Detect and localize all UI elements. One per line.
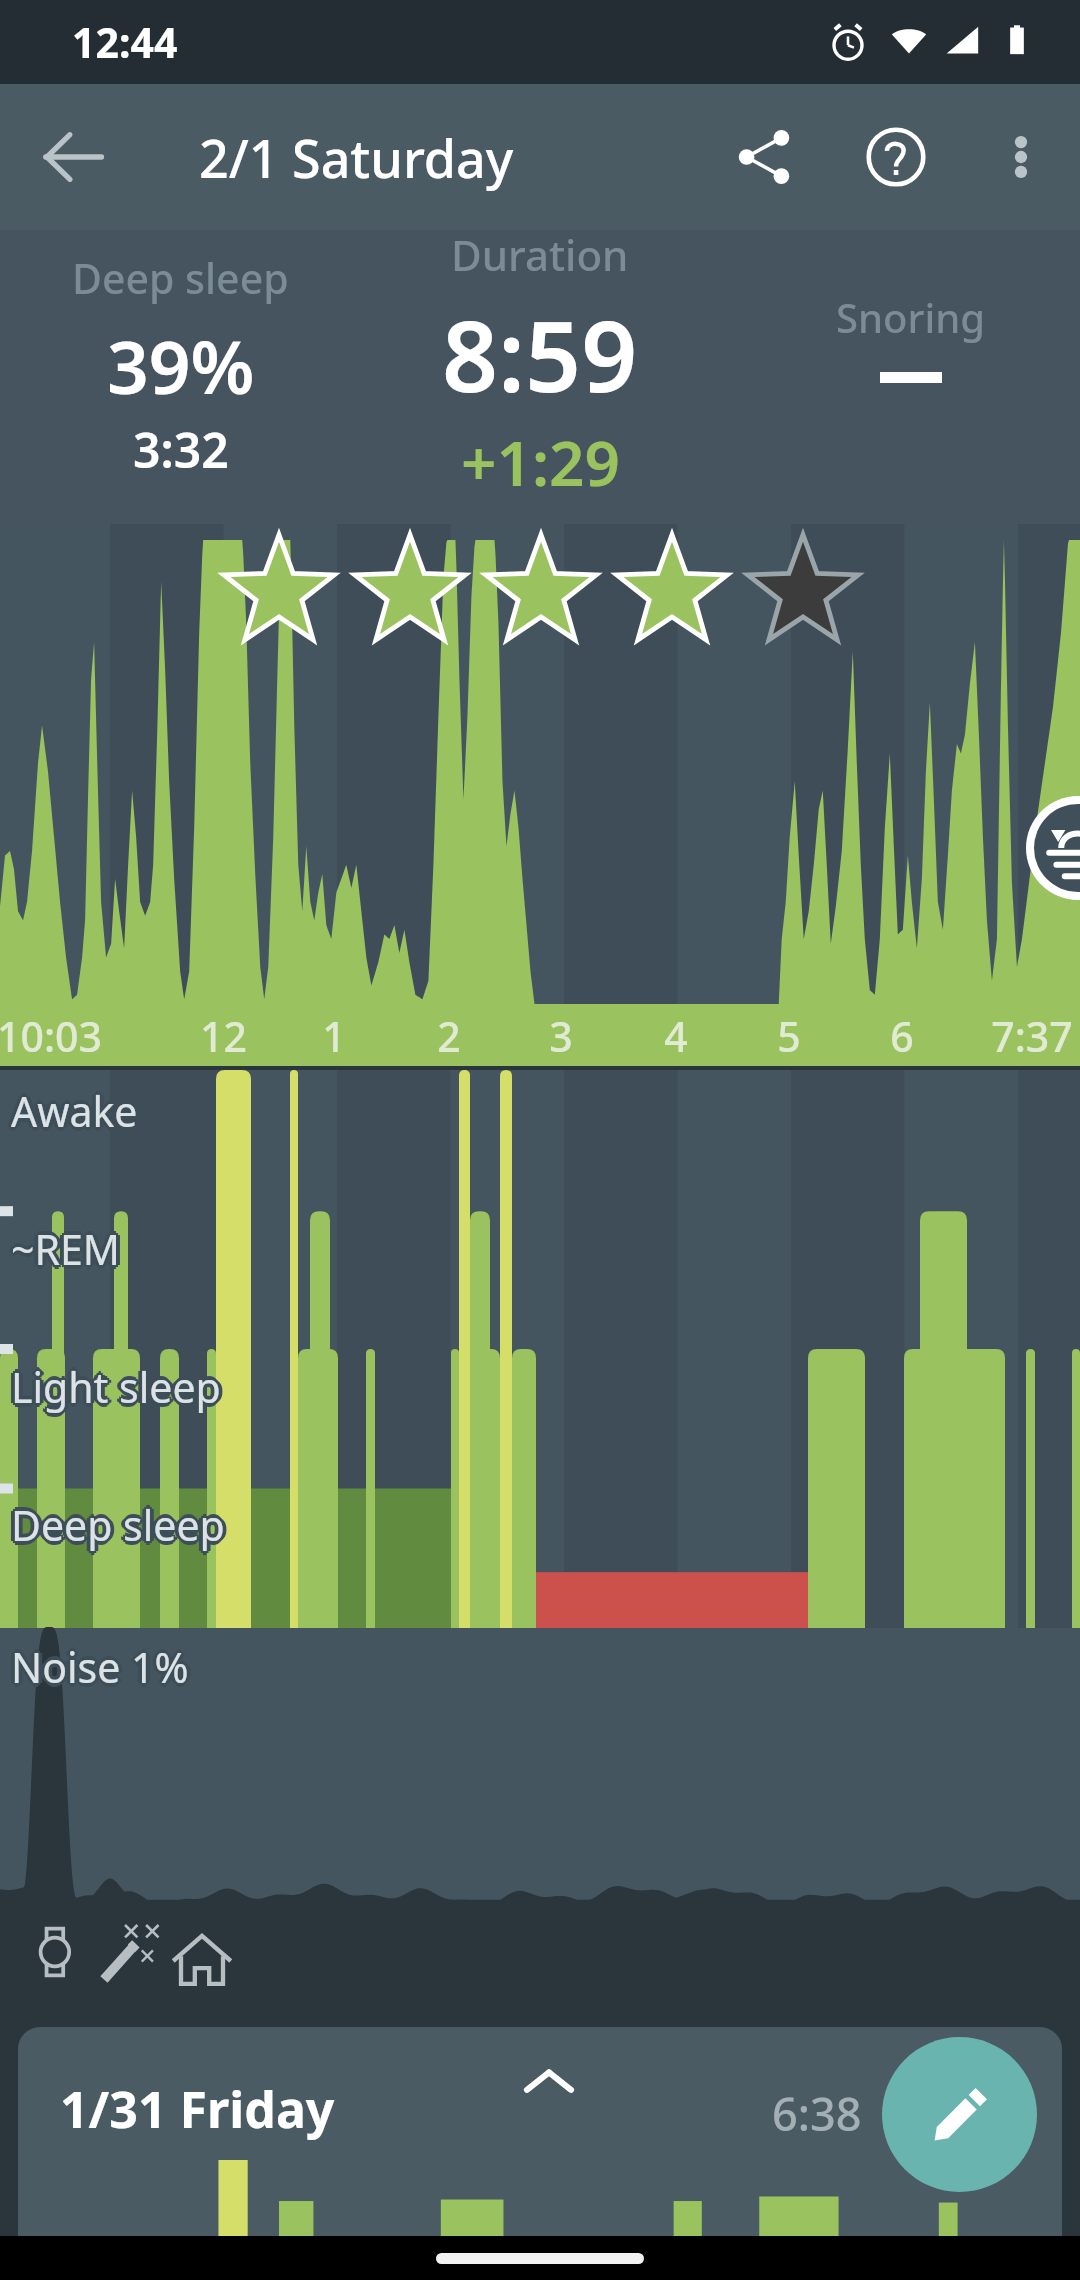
staticText: 10:03 xyxy=(0,1008,102,1064)
staticText: Noise 1% xyxy=(11,1637,189,1693)
staticText: 4 xyxy=(664,1008,688,1064)
staticText: Noise 1% xyxy=(11,1641,189,1697)
staticText: ~REM xyxy=(11,1217,120,1273)
staticText: ~REM xyxy=(13,1219,122,1275)
staticText: 3 xyxy=(549,1008,573,1064)
staticText: ~REM xyxy=(15,1221,124,1277)
staticText: Awake xyxy=(15,1083,142,1139)
staticText: 8:59 xyxy=(442,287,638,420)
staticText: Light sleep xyxy=(13,1357,223,1413)
staticText: 12 xyxy=(200,1008,247,1064)
staticText: Deep sleep xyxy=(11,1493,225,1549)
button[interactable]: Wearable xyxy=(22,1920,94,1992)
staticText: Light sleep xyxy=(15,1359,225,1415)
staticText: Noise 1% xyxy=(15,1639,193,1695)
staticText: 6:38 xyxy=(772,2083,862,2144)
staticText: Light sleep xyxy=(13,1359,223,1415)
staticText: Deep sleep xyxy=(11,1495,225,1551)
staticText: Deep sleep xyxy=(15,1497,229,1553)
staticText: ~REM xyxy=(13,1223,122,1279)
staticText: 2/1 Saturday xyxy=(199,122,514,193)
button[interactable]: Smart features xyxy=(94,1920,166,1992)
staticText: Noise 1% xyxy=(9,1637,187,1693)
staticText: Awake xyxy=(11,1087,138,1143)
staticText: Deep sleep xyxy=(11,1497,225,1553)
staticText: Deep sleep xyxy=(13,1497,227,1553)
staticText: Awake xyxy=(11,1081,138,1137)
staticText: 5 xyxy=(777,1008,801,1064)
staticText: ~REM xyxy=(7,1221,116,1277)
staticText: Awake xyxy=(11,1085,138,1141)
staticText: Awake xyxy=(11,1079,138,1135)
staticText: Deep sleep xyxy=(9,1499,223,1555)
staticText: 7:37 xyxy=(991,1008,1073,1064)
staticText: Deep sleep xyxy=(72,250,289,306)
staticText: 12:44 xyxy=(72,14,178,70)
staticText: 2 xyxy=(437,1008,461,1064)
button[interactable]: Back xyxy=(0,84,146,230)
staticText: ~REM xyxy=(11,1225,120,1281)
staticText: Deep sleep xyxy=(7,1497,221,1553)
staticText: Deep sleep xyxy=(9,1497,223,1553)
staticText: 3:32 xyxy=(133,417,229,482)
staticText: ~REM xyxy=(11,1219,120,1275)
staticText: +1:29 xyxy=(461,420,620,504)
staticText: Awake xyxy=(9,1081,136,1137)
staticText: ~REM xyxy=(13,1221,122,1277)
staticText: 39% xyxy=(107,316,255,415)
staticText: Deep sleep xyxy=(11,1501,225,1557)
staticText: Duration xyxy=(451,226,629,283)
staticText: Deep sleep xyxy=(13,1499,227,1555)
staticText: Deep sleep xyxy=(9,1495,223,1551)
staticText: Light sleep xyxy=(9,1361,219,1417)
staticText: Light sleep xyxy=(11,1359,221,1415)
button[interactable]: More options xyxy=(962,98,1080,216)
staticText: Noise 1% xyxy=(13,1637,191,1693)
staticText: ~REM xyxy=(9,1223,118,1279)
staticText: Noise 1% xyxy=(7,1639,185,1695)
staticText: Noise 1% xyxy=(13,1641,191,1697)
staticText: 1 xyxy=(322,1008,346,1064)
staticText: 1/31 Friday xyxy=(60,2075,335,2143)
button[interactable]: Wake up time xyxy=(1026,796,1080,900)
staticText: Noise 1% xyxy=(11,1643,189,1699)
staticText: Light sleep xyxy=(11,1355,221,1411)
staticText: Noise 1% xyxy=(11,1635,189,1691)
staticText: Noise 1% xyxy=(9,1639,187,1695)
staticText: Awake xyxy=(7,1083,134,1139)
staticText: Snoring xyxy=(836,290,986,344)
button[interactable]: Edit xyxy=(882,2037,1037,2192)
button[interactable]: Share xyxy=(698,91,830,223)
staticText: Light sleep xyxy=(7,1359,217,1415)
staticText: Awake xyxy=(13,1081,140,1137)
staticText: Light sleep xyxy=(11,1357,221,1413)
staticText: Awake xyxy=(9,1085,136,1141)
staticText: Deep sleep xyxy=(13,1495,227,1551)
staticText: ~REM xyxy=(11,1221,120,1277)
staticText: Light sleep xyxy=(9,1359,219,1415)
staticText: ~REM xyxy=(9,1221,118,1277)
staticText: Deep sleep xyxy=(11,1499,225,1555)
button[interactable]: 1/31 Friday xyxy=(18,2027,1062,2236)
staticText: Light sleep xyxy=(9,1357,219,1413)
staticText: Noise 1% xyxy=(9,1641,187,1697)
staticText: Awake xyxy=(11,1083,138,1139)
staticText: Awake xyxy=(13,1083,140,1139)
staticText: Awake xyxy=(9,1083,136,1139)
button[interactable]: Home automation xyxy=(166,1920,238,1992)
staticText: Noise 1% xyxy=(13,1639,191,1695)
staticText: Light sleep xyxy=(13,1361,223,1417)
staticText: Light sleep xyxy=(11,1361,221,1417)
staticText: Light sleep xyxy=(11,1363,221,1419)
staticText: ~REM xyxy=(11,1223,120,1279)
button[interactable]: Help xyxy=(830,91,962,223)
staticText: 6 xyxy=(890,1008,914,1064)
staticText: Awake xyxy=(13,1085,140,1141)
staticText: Noise 1% xyxy=(11,1639,189,1695)
staticText: ~REM xyxy=(9,1219,118,1275)
